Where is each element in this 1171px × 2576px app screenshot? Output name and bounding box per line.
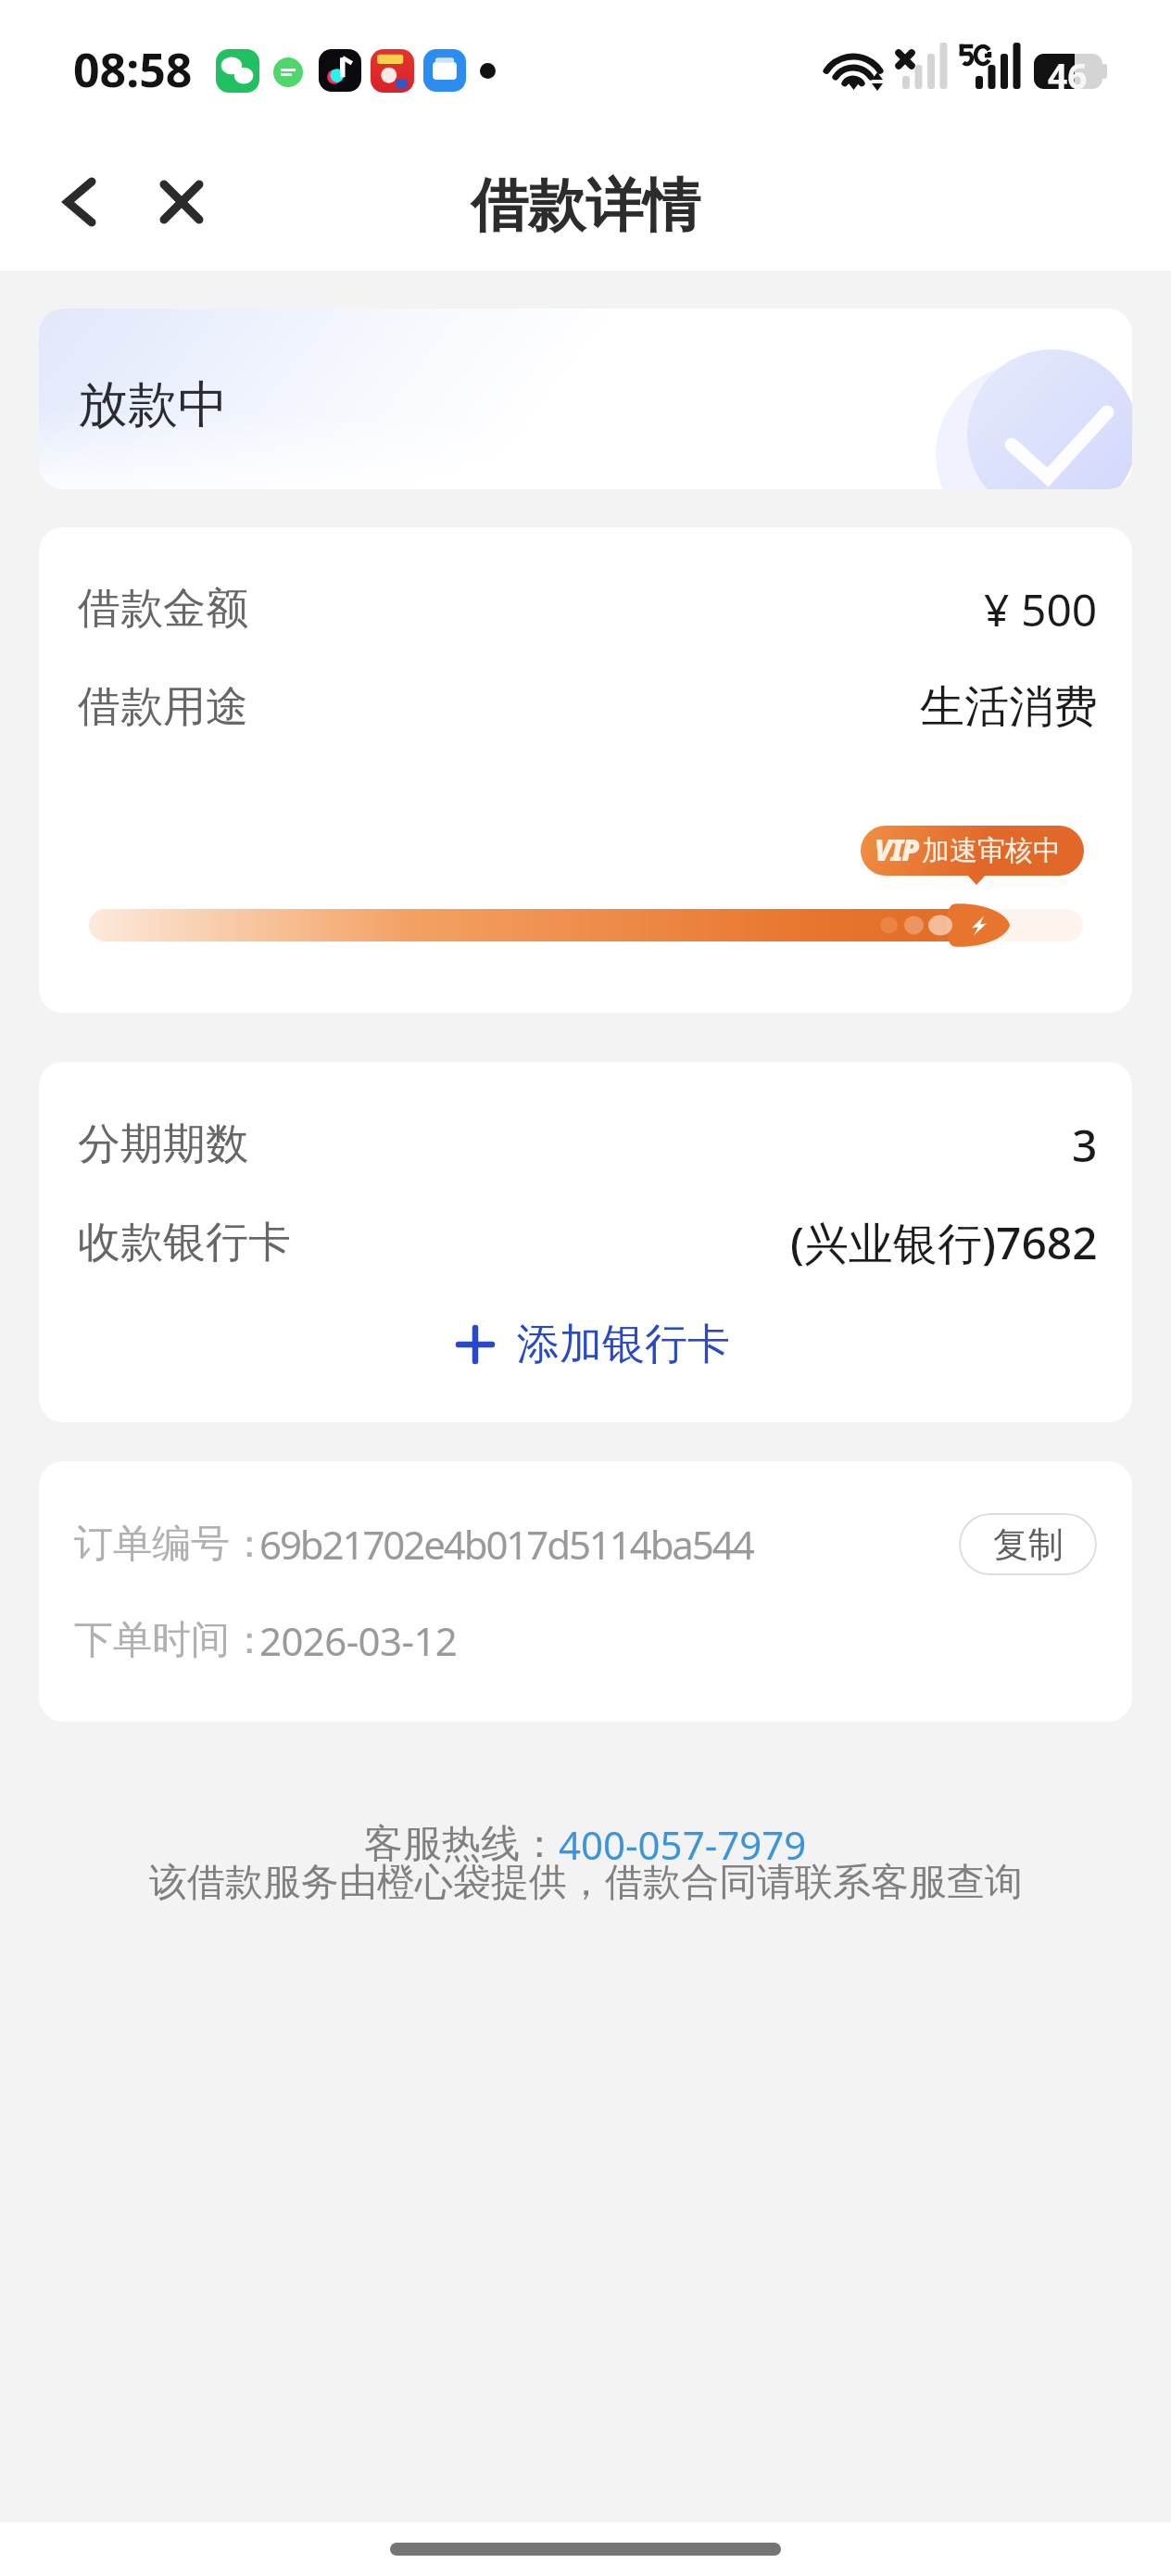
staticText: ¥ 500 <box>984 579 1098 639</box>
button[interactable]: 400-057-7979 <box>559 1818 807 1871</box>
staticText: 添加银行卡 <box>517 1318 730 1371</box>
staticText: 该借款服务由橙心袋提供，借款合同请联系客服查询 <box>149 1859 1023 1907</box>
staticText: 69b21702e4b017d5114ba544 <box>259 1518 753 1571</box>
button[interactable]: Back <box>39 161 120 243</box>
staticText: 客服热线： <box>364 1820 559 1869</box>
staticText: 订单编号： <box>74 1520 269 1569</box>
staticText: 借款用途 <box>78 680 248 734</box>
staticText: 加速审核中 <box>922 833 1061 868</box>
staticText: VIP <box>875 830 919 869</box>
button[interactable]: Close <box>141 161 222 243</box>
button[interactable]: 添加银行卡 <box>458 1307 730 1383</box>
staticText: 分期期数 <box>78 1118 248 1171</box>
staticText: 收款银行卡 <box>78 1216 291 1269</box>
staticText: 08:58 <box>73 38 193 101</box>
staticText: 放款中 <box>78 373 228 436</box>
button[interactable]: 复制 <box>959 1513 1097 1575</box>
staticText: 生活消费 <box>920 679 1098 735</box>
staticText: 46 <box>1048 52 1088 98</box>
staticText: 3 <box>1072 1115 1098 1175</box>
staticText: 借款详情 <box>471 170 700 242</box>
staticText: (兴业银行)7682 <box>790 1212 1098 1273</box>
staticText: 借款金额 <box>78 582 248 636</box>
staticText: 下单时间： <box>74 1616 269 1665</box>
staticText: 复制 <box>993 1522 1064 1567</box>
staticText: 2026-03-12 <box>259 1614 458 1667</box>
